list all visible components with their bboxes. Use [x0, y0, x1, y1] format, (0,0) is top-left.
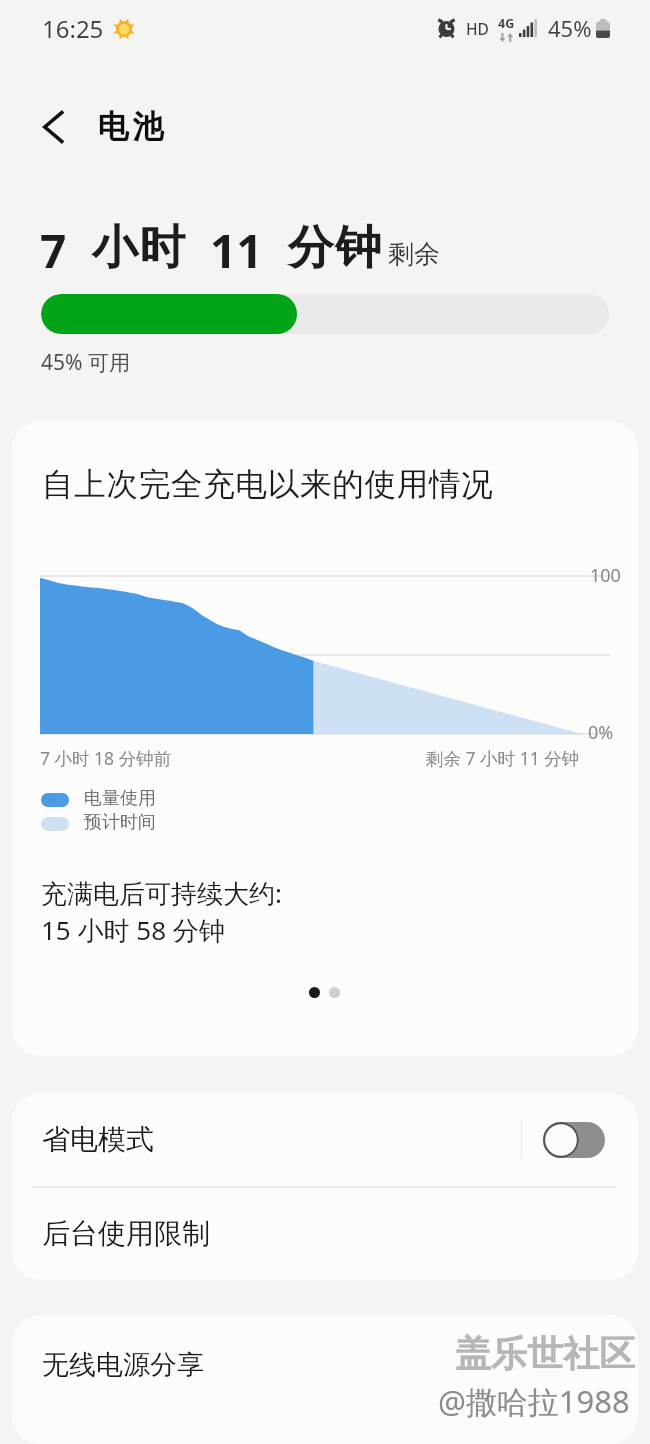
button[interactable]: 无线电源分享 [12, 1315, 638, 1444]
staticText: 45% 可用 [41, 348, 130, 377]
staticText: 小时 [91, 219, 186, 277]
staticText: 剩余 7 小时 11 分钟 [426, 746, 580, 770]
staticText: 充满电后可持续大约: [41, 875, 282, 911]
button[interactable]: Page 1 [301, 979, 328, 1006]
staticText: 11 [210, 219, 263, 282]
staticText: 剩余 [388, 238, 440, 271]
staticText: 无线电源分享 [42, 1348, 204, 1382]
staticText: 自上次完全充电以来的使用情况 [42, 465, 494, 505]
staticText: 16:25 [42, 12, 104, 45]
button[interactable]: Page 2 [321, 979, 348, 1006]
staticText: 电量使用 [84, 787, 156, 810]
button[interactable]: 省电模式 switch [532, 1116, 616, 1164]
staticText: 省电模式 [42, 1122, 154, 1157]
staticText: @撒哈拉1988 [438, 1380, 630, 1422]
staticText: HD [466, 18, 489, 39]
staticText: 7 [40, 219, 67, 282]
staticText: 4G [498, 15, 515, 32]
staticText: 100 [590, 563, 621, 588]
staticText: 预计时间 [84, 811, 156, 834]
staticText: 分钟 [287, 219, 382, 277]
staticText: 后台使用限制 [42, 1216, 210, 1251]
button[interactable]: Back [24, 96, 86, 158]
staticText: 0% [588, 720, 614, 745]
staticText: 7 小时 18 分钟前 [40, 746, 172, 770]
staticText: 盖乐世社区 [455, 1331, 635, 1376]
staticText: 15 小时 58 分钟 [41, 912, 225, 948]
button[interactable]: 后台使用限制 [12, 1187, 638, 1280]
staticText: 电池 [96, 107, 165, 146]
staticText: 45% [548, 13, 592, 43]
button[interactable]: 省电模式 [12, 1093, 638, 1186]
